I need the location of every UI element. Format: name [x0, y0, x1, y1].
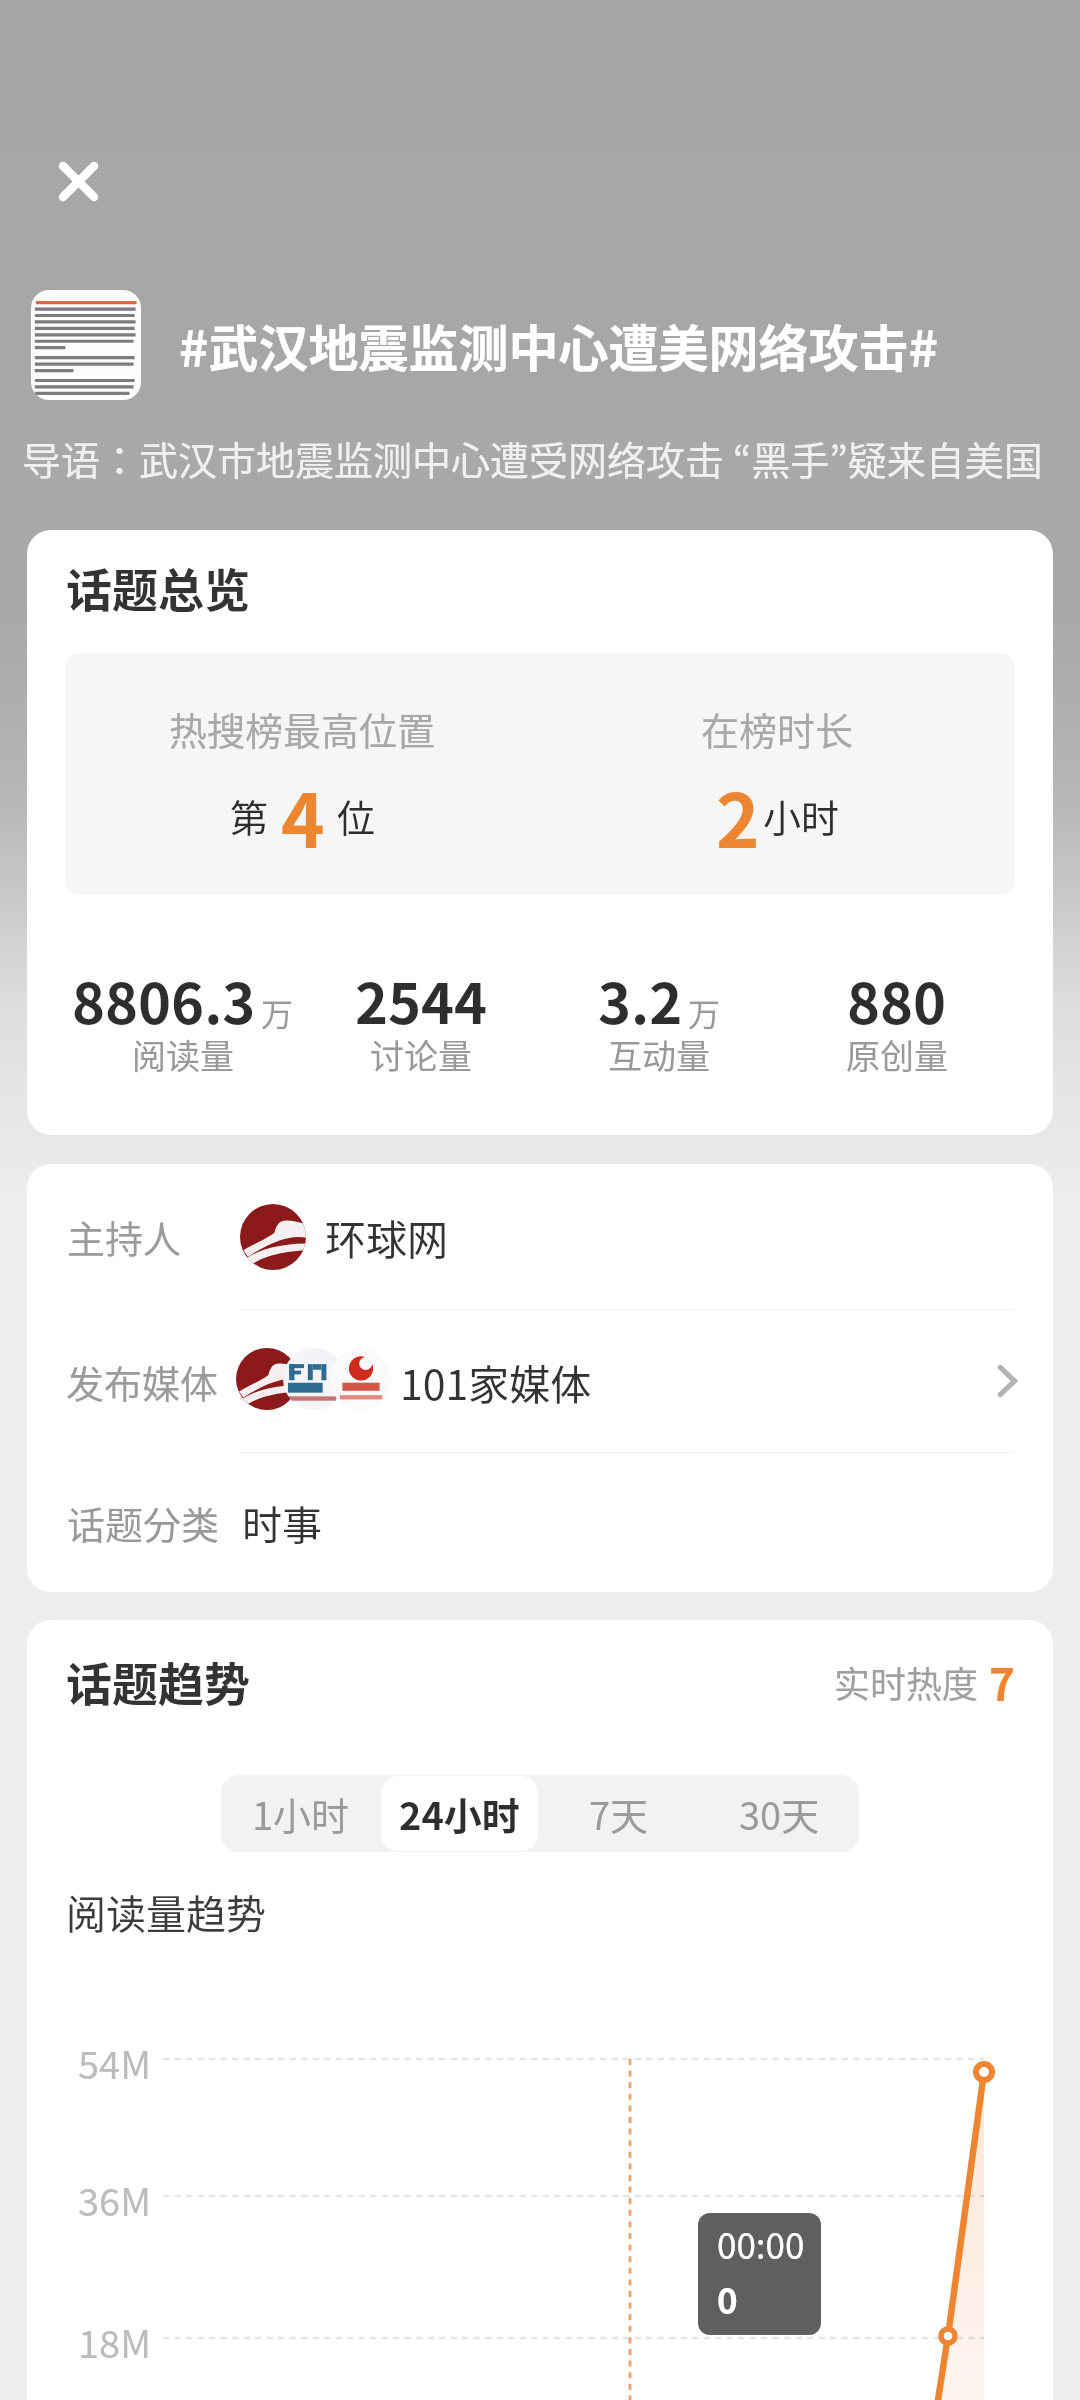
staticText: 7 — [989, 1650, 1015, 1714]
staticText: 在榜时长 — [701, 701, 854, 756]
button[interactable]: 30天 — [700, 1776, 858, 1851]
staticText: 时事 — [242, 1494, 322, 1552]
staticText: 话题趋势 — [66, 1648, 250, 1715]
staticText: 讨论量 — [370, 1030, 472, 1079]
staticText: 3.2 — [598, 959, 683, 1040]
staticText: 环球网 — [325, 1207, 448, 1266]
staticText: 2 — [716, 762, 760, 869]
staticText: 18M — [78, 2314, 152, 2369]
staticText: 互动量 — [608, 1030, 710, 1079]
staticText: 发布媒体 — [66, 1354, 219, 1409]
staticText: 54M — [78, 2035, 152, 2090]
staticText: 4 — [281, 762, 325, 869]
staticText: 万 — [261, 989, 294, 1035]
staticText: 导语：武汉市地震监测中心遭受网络攻击 “黑手”疑来自美国 — [22, 430, 1043, 486]
staticText: 话题总览 — [66, 554, 250, 621]
staticText: 101家媒体 — [400, 1352, 592, 1411]
staticText: 36M — [78, 2172, 152, 2227]
staticText: 第 — [230, 788, 269, 843]
button[interactable]: 7天 — [540, 1776, 698, 1851]
staticText: #武汉地震监测中心遭美网络攻击# — [179, 309, 938, 381]
button[interactable]: Close — [41, 144, 115, 218]
staticText: 0 — [717, 2273, 738, 2324]
button[interactable]: 发布媒体 — [27, 1310, 1053, 1452]
staticText: 原创量 — [846, 1030, 948, 1079]
staticText: 主持人 — [67, 1209, 182, 1264]
button[interactable]: 1小时 — [222, 1776, 379, 1851]
staticText: 实时热度 — [834, 1656, 979, 1708]
staticText: 1小时 — [252, 1786, 350, 1841]
staticText: 小时 — [763, 788, 840, 843]
button[interactable]: 24小时 — [381, 1776, 538, 1851]
staticText: 阅读量趋势 — [66, 1883, 266, 1941]
button[interactable]: 主持人 — [27, 1164, 1053, 1309]
staticText: 30天 — [739, 1786, 820, 1841]
staticText: 万 — [688, 989, 721, 1035]
staticText: 位 — [337, 788, 376, 843]
staticText: 00:00 — [717, 2218, 805, 2269]
staticText: 7天 — [589, 1786, 649, 1841]
staticText: 话题分类 — [67, 1495, 220, 1550]
button[interactable]: Article preview — [31, 290, 141, 400]
staticText: 2544 — [355, 959, 488, 1040]
staticText: 8806.3 — [72, 959, 256, 1040]
staticText: 阅读量 — [132, 1030, 234, 1079]
staticText: 24小时 — [399, 1786, 520, 1841]
staticText: 880 — [847, 959, 947, 1040]
staticText: 热搜榜最高位置 — [169, 701, 436, 756]
